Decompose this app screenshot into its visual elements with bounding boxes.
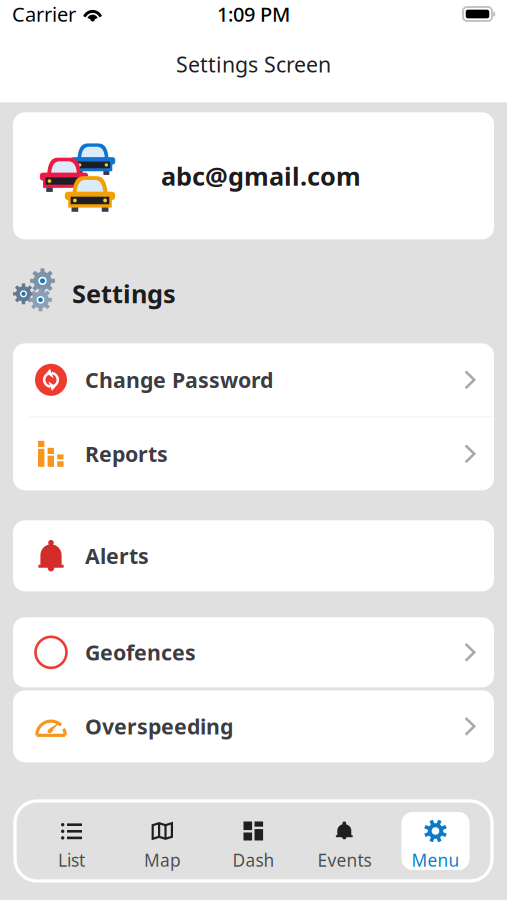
staticText: Events [317, 848, 371, 871]
button[interactable]: Geofences [13, 617, 494, 687]
staticText: Alerts [85, 542, 149, 570]
staticText: Settings Screen [176, 50, 331, 78]
staticText: Settings [72, 276, 176, 310]
staticText: Carrier [12, 1, 76, 27]
staticText: 1:09 PM [217, 1, 290, 27]
button[interactable]: Menu [390, 801, 481, 881]
staticText: Overspeeding [85, 712, 233, 740]
staticText: Menu [411, 848, 459, 871]
staticText: Map [144, 848, 181, 871]
staticText: abc@gmail.com [161, 159, 361, 193]
staticText: Geofences [85, 638, 196, 666]
button[interactable]: Overspeeding [13, 690, 494, 762]
button[interactable]: Reports [13, 417, 494, 490]
staticText: List [58, 848, 85, 871]
button[interactable]: Alerts [13, 520, 494, 591]
button[interactable]: Dash [208, 801, 299, 881]
button[interactable]: List [26, 801, 117, 881]
staticText: Reports [85, 440, 168, 468]
button[interactable]: Events [299, 801, 390, 881]
staticText: Dash [232, 848, 274, 871]
button[interactable]: Map [117, 801, 208, 881]
button[interactable]: Change Password [13, 343, 494, 416]
staticText: Change Password [85, 366, 273, 394]
